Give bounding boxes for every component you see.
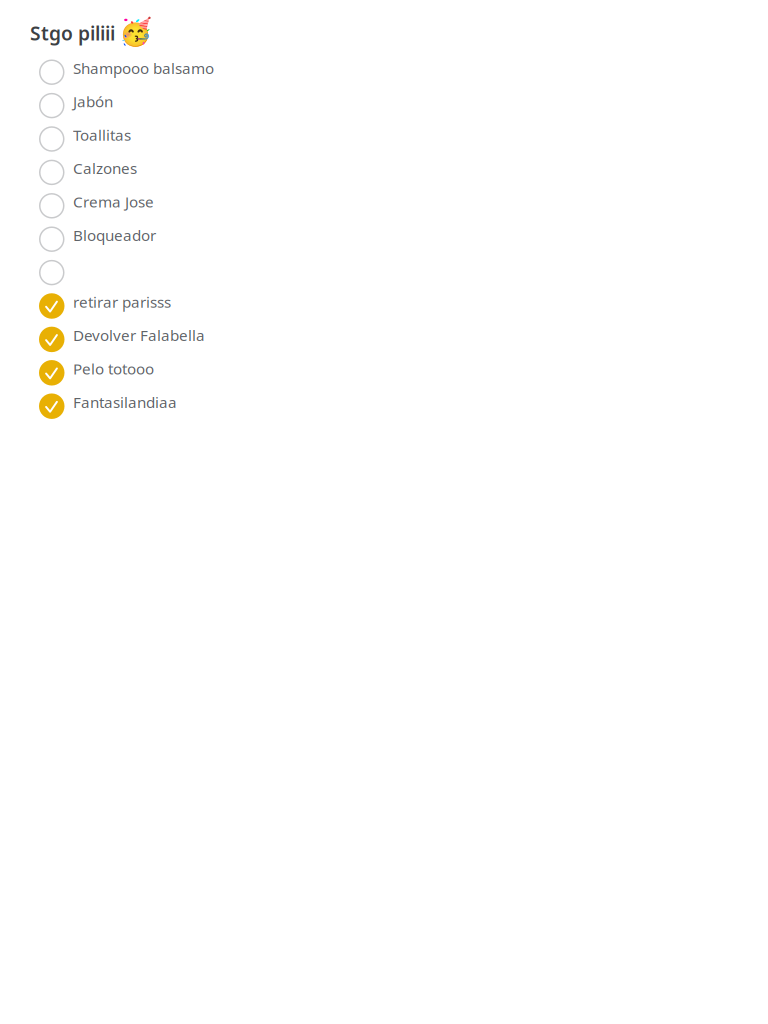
button[interactable]: Jabón <box>0 89 768 122</box>
staticText: Crema Jose <box>73 191 154 212</box>
button[interactable]: Toallitas <box>0 122 768 156</box>
staticText: retirar parisss <box>73 291 171 312</box>
staticText: Stgo piliii <box>30 20 115 46</box>
button[interactable]: Bloqueador <box>0 222 768 256</box>
staticText: Bloqueador <box>73 225 156 245</box>
staticText: 🥳 <box>119 17 152 47</box>
button[interactable]: Untitled item <box>0 256 768 289</box>
button[interactable]: retirar parisss <box>0 289 768 323</box>
staticText: Calzones <box>73 158 137 178</box>
button[interactable]: Fantasilandiaa <box>0 389 768 423</box>
staticText: Fantasilandiaa <box>73 392 177 412</box>
staticText: Shampooo balsamo <box>73 58 214 78</box>
button[interactable]: Pelo totooo <box>0 356 768 389</box>
staticText: Toallitas <box>73 124 131 145</box>
button[interactable]: Crema Jose <box>0 189 768 222</box>
button[interactable]: Shampooo balsamo <box>0 55 768 89</box>
staticText: Jabón <box>73 91 113 112</box>
staticText: Pelo totooo <box>73 358 154 379</box>
button[interactable]: Devolver Falabella <box>0 323 768 356</box>
button[interactable]: Calzones <box>0 156 768 189</box>
staticText: Devolver Falabella <box>73 325 205 345</box>
